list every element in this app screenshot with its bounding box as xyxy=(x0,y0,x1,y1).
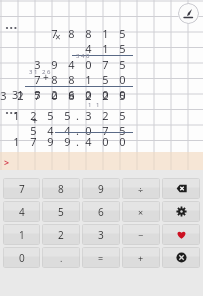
staticText: 3 xyxy=(0,88,12,103)
staticText: 6 xyxy=(63,87,80,102)
staticText: 5 xyxy=(114,123,131,138)
staticText: 5 xyxy=(114,108,131,123)
staticText: 7 xyxy=(29,88,46,103)
staticText: 2 xyxy=(46,87,63,102)
button[interactable]: . xyxy=(42,247,80,268)
staticText: 9 xyxy=(46,57,63,72)
staticText: 1 xyxy=(80,72,97,87)
staticText: 4 xyxy=(80,41,97,56)
staticText: + xyxy=(138,252,144,264)
button[interactable]: More options xyxy=(3,107,21,119)
staticText: 1 1 xyxy=(88,101,100,109)
staticText: 0 xyxy=(19,251,25,265)
staticText: 2 xyxy=(12,88,29,103)
button[interactable]: 5 xyxy=(42,201,80,222)
button[interactable]: Favourite xyxy=(162,224,200,245)
staticText: 8 xyxy=(58,182,64,196)
button[interactable]: 6 xyxy=(82,201,120,222)
button[interactable]: Handwriting input xyxy=(178,3,199,24)
staticText: + xyxy=(32,113,38,127)
staticText: 4 xyxy=(59,123,76,138)
staticText: × xyxy=(55,30,61,44)
button[interactable]: 7 xyxy=(3,178,40,199)
staticText: . xyxy=(76,123,80,138)
staticText: 1 xyxy=(12,87,29,102)
staticText: 1 xyxy=(97,41,114,56)
button[interactable]: 8 xyxy=(42,178,80,199)
staticText: . xyxy=(60,252,63,264)
staticText: + xyxy=(43,70,49,84)
button[interactable]: 2 xyxy=(42,224,80,245)
staticText: 5 xyxy=(114,41,131,56)
staticText: 8 xyxy=(63,88,80,103)
staticText: 4 xyxy=(42,123,59,138)
staticText: . xyxy=(76,108,80,123)
button[interactable]: More options xyxy=(3,22,21,34)
staticText: 2 xyxy=(80,88,97,103)
staticText: 5 xyxy=(25,123,42,138)
staticText: 3 xyxy=(29,57,46,72)
button[interactable]: Clear xyxy=(162,247,200,268)
staticText: = xyxy=(98,252,104,264)
staticText: 0 xyxy=(80,57,97,72)
staticText: 0 xyxy=(114,134,131,149)
staticText: 4 xyxy=(63,57,80,72)
staticText: 5 xyxy=(114,88,131,103)
staticText: 4 xyxy=(19,205,25,219)
button[interactable]: 3 xyxy=(82,224,120,245)
staticText: 5 xyxy=(114,26,131,41)
staticText: . xyxy=(76,134,80,149)
staticText: 1 xyxy=(8,108,25,123)
staticText: 5 xyxy=(42,108,59,123)
staticText: 0 xyxy=(80,87,97,102)
staticText: 5 xyxy=(58,205,64,219)
button[interactable]: ÷ xyxy=(122,178,160,199)
staticText: 8 xyxy=(63,72,80,87)
button[interactable]: + xyxy=(122,247,160,268)
button[interactable]: > xyxy=(0,152,203,170)
staticText: > xyxy=(4,156,10,168)
button[interactable]: Backspace xyxy=(162,178,200,199)
staticText: 0 xyxy=(114,87,131,102)
staticText: × xyxy=(138,206,144,218)
staticText: 1 xyxy=(8,134,25,149)
staticText: 2 xyxy=(25,108,42,123)
button[interactable]: Settings xyxy=(162,201,200,222)
button[interactable]: = xyxy=(82,247,120,268)
staticText: 9 xyxy=(98,182,104,196)
staticText: 2 xyxy=(58,228,64,242)
staticText: 2 xyxy=(97,108,114,123)
staticText: 7 xyxy=(19,182,25,196)
button[interactable]: − xyxy=(122,224,160,245)
staticText: 9 xyxy=(59,134,76,149)
staticText: 7 xyxy=(97,57,114,72)
staticText: 5 xyxy=(29,87,46,102)
staticText: 3 4 0 xyxy=(76,52,90,60)
staticText: 2 xyxy=(97,88,114,103)
staticText: 0 xyxy=(97,134,114,149)
staticText: 5 xyxy=(97,72,114,87)
staticText: 7 xyxy=(29,72,46,87)
button[interactable]: × xyxy=(122,201,160,222)
staticText: 9 xyxy=(42,134,59,149)
staticText: 6 xyxy=(98,205,104,219)
staticText: 5 xyxy=(114,57,131,72)
staticText: 1 xyxy=(19,228,25,242)
staticText: 0 xyxy=(114,72,131,87)
staticText: 0 xyxy=(46,88,63,103)
staticText: 0 xyxy=(80,123,97,138)
button[interactable]: 0 xyxy=(3,247,40,268)
staticText: 4 xyxy=(80,134,97,149)
staticText: 3 xyxy=(98,228,104,242)
staticText: 0 xyxy=(97,87,114,102)
staticText: − xyxy=(138,229,144,241)
staticText: 8 xyxy=(46,72,63,87)
staticText: 7 xyxy=(25,134,42,149)
button[interactable]: 4 xyxy=(3,201,40,222)
staticText: 8 xyxy=(80,26,97,41)
staticText: 7 xyxy=(97,123,114,138)
button[interactable]: 9 xyxy=(82,178,120,199)
button[interactable]: 1 xyxy=(3,224,40,245)
staticText: ÷ xyxy=(138,183,144,195)
staticText: 3 xyxy=(80,108,97,123)
